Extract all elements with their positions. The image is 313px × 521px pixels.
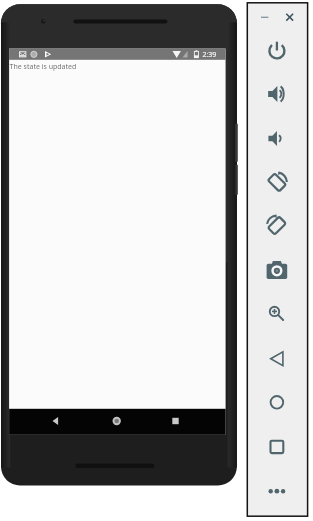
button[interactable]: Home — [105, 409, 129, 434]
button[interactable]: The state is updated — [9, 60, 226, 409]
button[interactable]: Rotate left — [266, 171, 288, 193]
button[interactable]: Power — [266, 40, 288, 62]
button[interactable]: Close — [283, 10, 296, 25]
button[interactable]: Volume down — [266, 128, 288, 150]
button[interactable]: Recent apps — [164, 409, 188, 434]
button[interactable]: More — [266, 480, 288, 502]
button[interactable]: Zoom — [266, 302, 288, 324]
button[interactable]: Back — [44, 409, 68, 434]
button[interactable]: Home — [266, 391, 288, 413]
button[interactable]: Take screenshot — [266, 259, 288, 281]
button[interactable]: Rotate right — [266, 215, 288, 237]
button[interactable]: Volume up — [266, 83, 288, 105]
button[interactable]: Minimize — [256, 10, 269, 25]
button[interactable]: Overview — [266, 436, 288, 458]
button[interactable]: Back — [266, 348, 288, 370]
